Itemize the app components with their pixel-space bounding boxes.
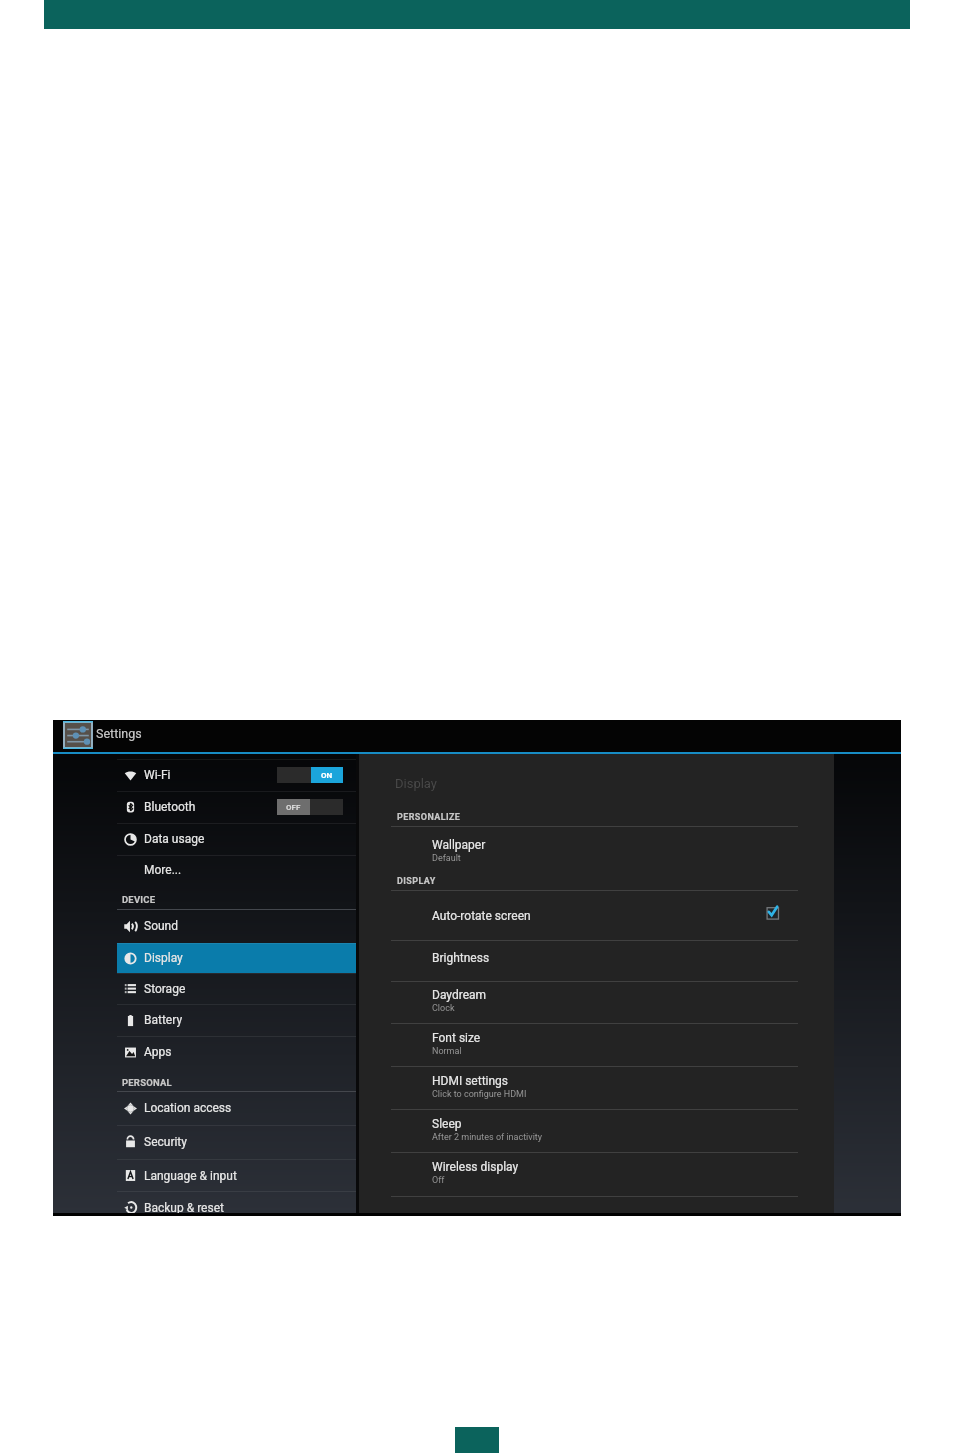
staticText: Data usage xyxy=(144,832,205,846)
button[interactable]: Storage xyxy=(53,973,357,1004)
staticText: Clock xyxy=(432,1003,455,1014)
staticText: Sound xyxy=(144,919,178,933)
staticText: After 2 minutes of inactivity xyxy=(432,1132,543,1143)
staticText: Daydream xyxy=(432,988,487,1002)
staticText: Storage xyxy=(144,982,186,996)
staticText: Security xyxy=(144,1135,187,1149)
button[interactable]: Auto-rotate screen xyxy=(359,898,834,927)
button[interactable]: Daydream xyxy=(359,977,834,1011)
button[interactable]: Backup & reset xyxy=(53,1191,357,1213)
staticText: Location access xyxy=(144,1101,232,1115)
button[interactable]: Settings app icon xyxy=(63,721,93,749)
staticText: Settings xyxy=(96,726,142,741)
staticText: Default xyxy=(432,853,461,864)
button[interactable]: Wallpaper xyxy=(359,827,834,861)
button[interactable]: HDMI settings xyxy=(359,1063,834,1097)
button[interactable]: Bluetooth xyxy=(53,791,357,823)
staticText: DISPLAY xyxy=(397,876,436,887)
staticText: Backup & reset xyxy=(144,1201,224,1213)
button[interactable]: More... xyxy=(53,855,357,884)
staticText: More... xyxy=(144,863,182,877)
staticText: Click to configure HDMI xyxy=(432,1089,527,1100)
staticText: Battery xyxy=(144,1013,183,1027)
button[interactable]: Wi-Fi xyxy=(53,759,357,791)
button[interactable]: Sound xyxy=(53,909,357,943)
staticText: Sleep xyxy=(432,1117,462,1131)
staticText: HDMI settings xyxy=(432,1074,509,1088)
staticText: PERSONAL xyxy=(122,1077,172,1088)
button[interactable]: Language & input xyxy=(53,1159,357,1192)
staticText: DEVICE xyxy=(122,894,156,905)
staticText: Language & input xyxy=(144,1169,237,1183)
button[interactable]: Wireless display xyxy=(359,1149,834,1183)
staticText: Wallpaper xyxy=(432,838,486,852)
button[interactable]: Font size xyxy=(359,1020,834,1054)
button[interactable]: Sleep xyxy=(359,1106,834,1140)
staticText: Wireless display xyxy=(432,1160,519,1174)
staticText: Apps xyxy=(144,1045,172,1059)
staticText: Brightness xyxy=(432,951,490,965)
staticText: Wi-Fi xyxy=(144,768,171,782)
button[interactable]: Security xyxy=(53,1125,357,1158)
staticText: Font size xyxy=(432,1031,481,1045)
staticText: OFF xyxy=(286,803,301,812)
staticText: Off xyxy=(432,1175,445,1186)
staticText: Display xyxy=(395,776,437,791)
button[interactable]: Apps xyxy=(53,1036,357,1068)
staticText: Auto-rotate screen xyxy=(432,909,531,923)
button[interactable]: Brightness xyxy=(359,940,834,969)
staticText: Normal xyxy=(432,1046,462,1057)
button[interactable]: Location access xyxy=(53,1091,357,1125)
button[interactable]: Display xyxy=(53,943,357,973)
button[interactable]: Battery xyxy=(53,1004,357,1036)
staticText: ON xyxy=(321,771,333,780)
staticText: Display xyxy=(144,951,183,965)
staticText: PERSONALIZE xyxy=(397,812,461,823)
button[interactable]: Data usage xyxy=(53,823,357,855)
staticText: Bluetooth xyxy=(144,800,196,814)
